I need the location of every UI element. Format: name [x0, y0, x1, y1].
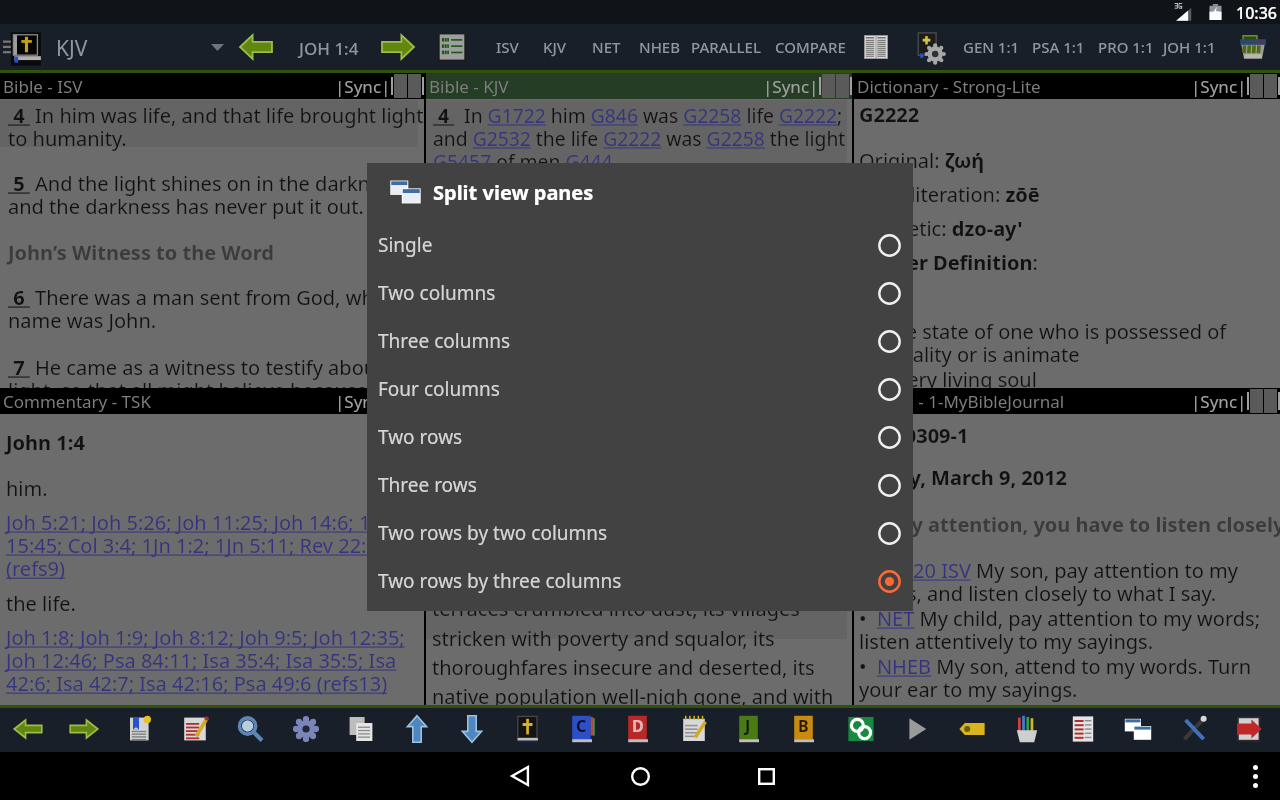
button[interactable]: G2222 [854, 99, 1280, 388]
staticText: Three rows [378, 472, 477, 498]
button[interactable]: Book [784, 707, 826, 751]
staticText: 6 There was a man sent from God, whose n… [8, 284, 424, 334]
staticText: Phonetic: dzo-ay' [859, 215, 1023, 242]
button[interactable]: PSA 1:1 [1030, 24, 1087, 70]
button[interactable]: Notes [174, 707, 216, 751]
staticText: 2. every living soul [859, 366, 1037, 388]
button[interactable]: Settings [912, 24, 950, 70]
staticText: Joh 1:8; Joh 1:9; Joh 8:12; Joh 9:5; Joh… [6, 624, 424, 697]
button[interactable]: Bible - KJV [426, 73, 852, 99]
staticText: John’s Witness to the Word [8, 239, 274, 266]
button[interactable]: KJV [541, 24, 569, 70]
staticText: Transliteration: zōē [859, 181, 1040, 208]
button[interactable]: Play [895, 707, 937, 751]
button[interactable]: Four columns [367, 365, 913, 413]
staticText: GEN 1:1 [963, 37, 1020, 57]
button[interactable]: PARALLEL [689, 24, 763, 70]
button[interactable]: Journal - 1-MyBibleJournal [854, 388, 1280, 414]
staticText: |Sync| [1191, 390, 1247, 413]
button[interactable]: Previous verse [236, 24, 276, 70]
button[interactable]: Next verse [378, 24, 418, 70]
button[interactable]: Basket [1236, 24, 1270, 70]
button[interactable]: Commentary - JFB [426, 388, 852, 414]
staticText: 4 In him was life, and that life brought… [8, 102, 424, 152]
staticText: Four columns [378, 376, 500, 402]
button[interactable]: GEN 1:1 [961, 24, 1022, 70]
button[interactable]: Notepad [673, 707, 715, 751]
button[interactable]: JOH 1:1 [1161, 24, 1218, 70]
button[interactable]: Windows [1117, 707, 1159, 751]
button[interactable]: Outline [1062, 707, 1104, 751]
button[interactable]: PRO 1:1 [1096, 24, 1156, 70]
button[interactable]: Next chapter [451, 707, 493, 751]
staticText: J [745, 715, 751, 737]
staticText: KJV [56, 34, 88, 63]
button[interactable]: Search [229, 707, 271, 751]
button[interactable]: Commentary - TSK [0, 388, 424, 414]
button[interactable]: NET [590, 24, 623, 70]
button[interactable]: Two rows [367, 413, 913, 461]
staticText: 20120309-1 [859, 422, 969, 449]
staticText: PRO 1:1 [1098, 37, 1154, 57]
button[interactable]: Exit [1228, 707, 1270, 751]
staticText: Dictionary - Strong-Lite [857, 75, 1041, 98]
staticText: |Sync| [335, 390, 391, 413]
staticText: Joh 5:21; Joh 5:26; Joh 11:25; Joh 14:6;… [6, 509, 424, 582]
button[interactable]: ISV [494, 24, 521, 70]
button[interactable]: Verse list [436, 24, 468, 70]
button[interactable]: Two columns [367, 269, 913, 317]
button[interactable]: COMPARE [773, 24, 848, 70]
button[interactable]: Choose version [203, 24, 231, 70]
staticText: • NHEB My son, attend to my words. Turn … [859, 653, 1279, 703]
button[interactable]: 20120309-1 [854, 414, 1280, 705]
staticText: 4 In G1722 him G846 was G2258 life G2222… [433, 102, 852, 175]
staticText: Two rows [378, 424, 463, 450]
button[interactable]: Settings [285, 707, 327, 751]
button[interactable]: Previous chapter [396, 707, 438, 751]
staticText: Bible - ISV [3, 75, 83, 98]
button[interactable]: Bible - ISV [0, 73, 424, 99]
button[interactable]: Copy [340, 707, 382, 751]
staticText: JOH 1:1 [1163, 37, 1216, 57]
staticText: Three columns [378, 328, 511, 354]
button[interactable]: Three rows [367, 461, 913, 509]
staticText: ISV [496, 37, 519, 57]
button[interactable]: Bookmarks [118, 707, 160, 751]
button[interactable]: Recent apps [736, 752, 796, 800]
button[interactable]: Bible [507, 707, 549, 751]
button[interactable]: Open navigation drawer [2, 24, 44, 70]
button[interactable]: Journal [729, 707, 771, 751]
staticText: Commentary - JFB [429, 390, 573, 413]
button[interactable]: Two rows by two columns [367, 509, 913, 557]
button[interactable]: Sync [840, 707, 882, 751]
button[interactable]: Back [490, 752, 550, 800]
button[interactable]: 4 In him was life, and that life brought… [0, 99, 424, 388]
staticText: COMPARE [775, 37, 846, 57]
button[interactable]: Back [7, 707, 49, 751]
button[interactable]: Two rows by three columns [367, 557, 913, 605]
button[interactable]: Parallel pages [858, 24, 894, 70]
button[interactable]: Home [610, 752, 670, 800]
staticText: Single [378, 232, 433, 258]
button[interactable]: Dictionary - Strong-Lite [854, 73, 1280, 99]
button[interactable]: 4 In G1722 him G846 was G2258 life G2222… [426, 99, 852, 388]
button[interactable]: Commentary [562, 707, 604, 751]
button[interactable]: More options [1236, 752, 1274, 800]
staticText: |Sync| [763, 75, 819, 98]
button[interactable]: Highlighters [1006, 707, 1048, 751]
button[interactable]: terraces crumbled into dust, its village… [426, 414, 852, 705]
button[interactable]: Three columns [367, 317, 913, 365]
button[interactable]: Forward [63, 707, 105, 751]
button[interactable]: Tools [1173, 707, 1215, 751]
button[interactable]: JOH 1:4 [299, 37, 359, 60]
staticText: KJV [543, 37, 567, 57]
staticText: 1. the state of one who is possessed of … [859, 318, 1227, 368]
staticText: Thayer Definition: [859, 249, 1038, 276]
button[interactable]: Single [367, 221, 913, 269]
button[interactable]: Tag [951, 707, 993, 751]
button[interactable]: John 1:4 [0, 414, 424, 705]
staticText: Pro 4:20 ISV My son, pay attention to my… [859, 557, 1279, 607]
staticText: Split view panes [433, 179, 594, 206]
button[interactable]: Dictionary [618, 707, 660, 751]
button[interactable]: NHEB [637, 24, 683, 70]
